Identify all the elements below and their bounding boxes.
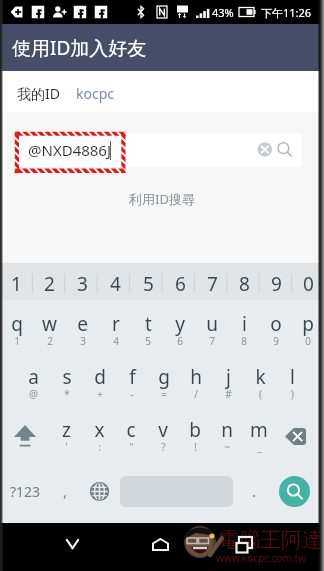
button[interactable]: Shift [0, 406, 50, 459]
staticText: 3 [80, 334, 86, 348]
button[interactable]: Hide keyboard [52, 524, 92, 564]
staticText: l [290, 364, 295, 390]
staticText: 電腦王阿達 [218, 527, 323, 553]
staticText: 7 [209, 334, 215, 348]
button[interactable]: d [83, 353, 116, 406]
button[interactable]: 1 [0, 263, 33, 300]
staticText: 7 [207, 271, 218, 297]
staticText: s [62, 364, 72, 390]
button[interactable]: ?123 [0, 459, 51, 523]
button[interactable]: x [83, 406, 115, 459]
staticText: v [158, 417, 168, 443]
button[interactable]: 3 [66, 263, 99, 300]
staticText: / [194, 387, 198, 401]
staticText: 9 [271, 271, 282, 297]
button[interactable]: 5 [132, 263, 164, 300]
staticText: 下午11:26 [261, 5, 312, 20]
button[interactable]: z [50, 406, 83, 459]
button[interactable]: Backspace [275, 406, 324, 459]
staticText: " [129, 440, 134, 454]
button[interactable]: h [180, 353, 212, 406]
button[interactable]: f [116, 353, 148, 406]
button[interactable]: 8 [228, 263, 260, 300]
staticText: 6 [177, 334, 183, 348]
button[interactable]: y [164, 300, 196, 353]
staticText: kocpc [76, 84, 114, 103]
staticText: t [145, 311, 152, 337]
staticText: j [226, 364, 231, 390]
staticText: z [62, 417, 71, 443]
staticText: # [225, 387, 232, 401]
staticText: 使用ID加入好友 [12, 35, 147, 61]
button[interactable]: u [196, 300, 228, 353]
staticText: 4 [110, 271, 121, 297]
staticText: n [221, 417, 233, 443]
button[interactable]: l [276, 353, 308, 406]
staticText: 5 [145, 334, 151, 348]
button[interactable]: g [148, 353, 180, 406]
button[interactable]: Change keyboard language [79, 459, 119, 523]
staticText: ~ [224, 440, 230, 454]
staticText: @NXD4886J [28, 140, 112, 160]
staticText: , [63, 481, 68, 501]
staticText: 8 [239, 271, 250, 297]
button[interactable]: @NXD4886J [17, 133, 302, 167]
staticText: ?123 [10, 482, 41, 501]
button[interactable]: j [212, 353, 244, 406]
button[interactable]: a [17, 353, 50, 406]
staticText: . [252, 481, 257, 501]
staticText: 0 [303, 271, 314, 297]
staticText: q [11, 311, 23, 337]
button[interactable]: 我的ID [0, 71, 324, 112]
staticText: ? [161, 440, 166, 454]
button[interactable]: 9 [260, 263, 292, 300]
button[interactable]: Home [140, 524, 180, 564]
button[interactable]: 7 [196, 263, 228, 300]
staticText: b [189, 417, 201, 443]
staticText: c [126, 417, 136, 443]
staticText: @ [29, 387, 38, 401]
button[interactable]: , [51, 459, 79, 523]
staticText: 4 [113, 334, 119, 348]
staticText: x [94, 417, 105, 443]
staticText: m [250, 417, 268, 443]
staticText: 6 [175, 271, 186, 297]
button[interactable]: . [234, 459, 274, 523]
button[interactable]: c [115, 406, 147, 459]
staticText: 3 [77, 271, 88, 297]
staticText: ! [194, 440, 197, 454]
button[interactable]: s [50, 353, 83, 406]
staticText: _ [257, 440, 262, 454]
staticText: 5 [143, 271, 154, 297]
button[interactable]: q [0, 300, 33, 353]
staticText: 我的ID [17, 84, 60, 103]
button[interactable]: 使用ID加入好友 [0, 24, 324, 71]
staticText: www.kocpc.com.tw [216, 551, 307, 565]
button[interactable]: i [228, 300, 260, 353]
button[interactable]: w [33, 300, 66, 353]
staticText: e [77, 311, 88, 337]
button[interactable]: Search [279, 476, 310, 507]
staticText: 43% [212, 5, 234, 20]
staticText: f [129, 364, 136, 390]
button[interactable]: e [66, 300, 99, 353]
button[interactable]: t [132, 300, 164, 353]
staticText: 0 [305, 334, 311, 348]
button[interactable]: o [260, 300, 292, 353]
staticText: u [206, 311, 218, 337]
button[interactable]: b [179, 406, 211, 459]
button[interactable]: n [211, 406, 243, 459]
button[interactable]: 6 [164, 263, 196, 300]
button[interactable]: 4 [99, 263, 132, 300]
button[interactable]: r [99, 300, 132, 353]
staticText: 8 [241, 334, 247, 348]
button[interactable]: k [244, 353, 276, 406]
staticText: 1 [14, 334, 20, 348]
button[interactable]: 0 [292, 263, 324, 300]
button[interactable]: 2 [33, 263, 66, 300]
button[interactable]: p [292, 300, 324, 353]
button[interactable]: m [243, 406, 275, 459]
staticText: 1 [11, 271, 22, 297]
button[interactable]: v [147, 406, 179, 459]
